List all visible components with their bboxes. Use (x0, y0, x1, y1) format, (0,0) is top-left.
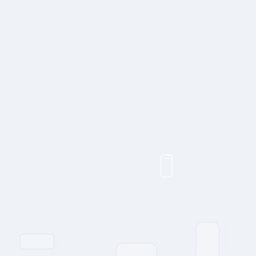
button[interactable]: Device (161, 155, 172, 177)
